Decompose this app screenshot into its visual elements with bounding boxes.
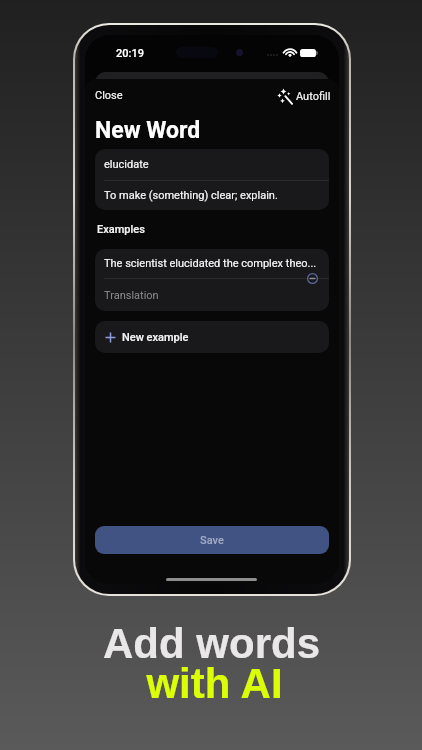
staticText: New Word: [95, 117, 201, 144]
button[interactable]: Translation: [95, 279, 329, 311]
button[interactable]: elucidate: [95, 149, 329, 180]
staticText: Close: [95, 89, 123, 102]
staticText: New example: [122, 331, 189, 344]
staticText: To make (something) clear; explain.: [104, 189, 278, 202]
staticText: The scientist elucidated the complex the…: [104, 257, 317, 270]
staticText: Save: [200, 534, 224, 547]
staticText: with AI: [146, 660, 283, 707]
staticText: Autofill: [296, 90, 331, 103]
button[interactable]: To make (something) clear; explain.: [95, 181, 329, 210]
staticText: Add words: [103, 620, 320, 667]
button[interactable]: Remove example: [304, 270, 320, 286]
staticText: Translation: [104, 289, 159, 302]
staticText: elucidate: [104, 158, 149, 171]
button[interactable]: Autofill: [272, 84, 336, 109]
staticText: 20:19: [116, 47, 144, 60]
button[interactable]: The scientist elucidated the complex the…: [95, 249, 329, 278]
staticText: Examples: [97, 223, 145, 236]
button[interactable]: New example: [95, 321, 329, 353]
button[interactable]: Save: [95, 526, 329, 554]
button[interactable]: Close: [90, 84, 128, 107]
